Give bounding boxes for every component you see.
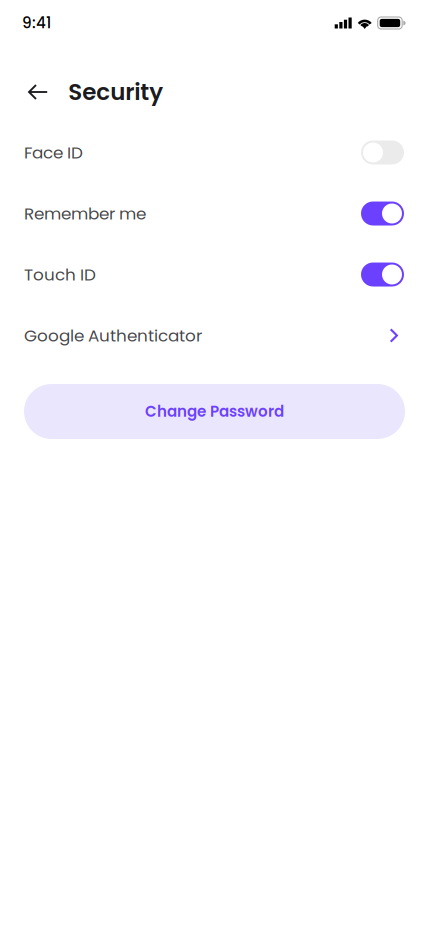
button[interactable]: Google Authenticator [0,305,428,366]
button[interactable]: Change Password [24,384,405,439]
button[interactable]: Remember me [0,183,428,244]
staticText: Google Authenticator [24,324,202,347]
staticText: Remember me [24,202,146,225]
button[interactable]: Touch ID [0,244,428,305]
button[interactable]: Back [28,74,48,110]
staticText: Touch ID [24,263,96,286]
staticText: Change Password [145,401,284,422]
staticText: Security [68,76,163,108]
staticText: 9:41 [22,12,51,34]
button[interactable]: Face ID [0,122,428,183]
staticText: Face ID [24,141,83,164]
